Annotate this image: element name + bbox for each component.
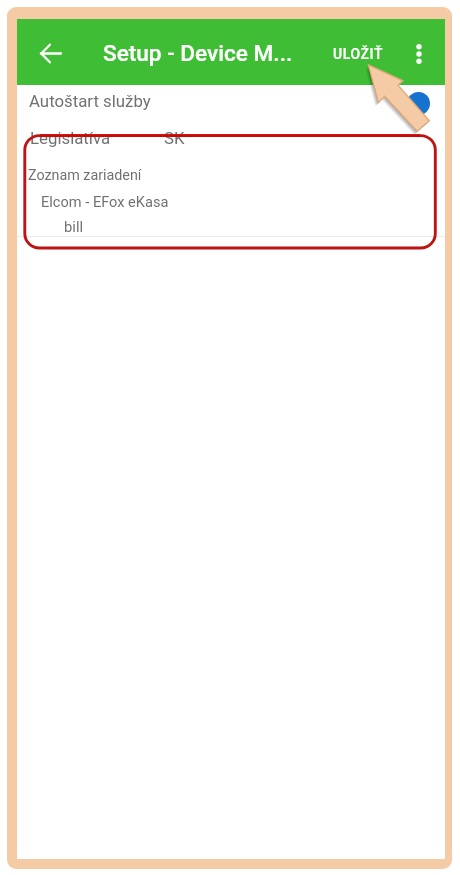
staticText: bill [64, 218, 84, 235]
staticText: SK [164, 128, 185, 148]
button[interactable]: Back [29, 32, 71, 74]
button[interactable]: Legislatíva [17, 122, 445, 154]
staticText: Elcom - EFox eKasa [41, 193, 169, 210]
button[interactable]: Elcom - EFox eKasa [17, 189, 445, 213]
staticText: Legislatíva [30, 128, 111, 148]
button[interactable]: ULOŽIŤ [323, 34, 394, 74]
button[interactable]: bill [17, 214, 445, 238]
staticText: ULOŽIŤ [333, 46, 384, 62]
button[interactable]: More options [398, 33, 439, 74]
staticText: Autoštart služby [29, 91, 151, 111]
staticText: Setup - Device M... [103, 40, 293, 66]
staticText: Zoznam zariadení [28, 167, 142, 184]
button[interactable]: Autoštart služby [17, 85, 445, 117]
button[interactable]: Zoznam zariadení [17, 163, 445, 187]
